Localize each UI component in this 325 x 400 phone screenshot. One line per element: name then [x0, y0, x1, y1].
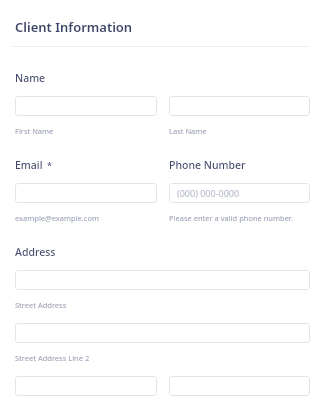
- staticText: *: [47, 159, 52, 171]
- button[interactable]: [169, 96, 310, 116]
- staticText: Street Address: [15, 300, 67, 310]
- button[interactable]: [15, 376, 157, 396]
- button[interactable]: [169, 376, 310, 396]
- staticText: Client Information: [15, 18, 133, 36]
- staticText: Phone Number: [169, 158, 246, 172]
- button[interactable]: (000) 000-0000: [169, 183, 310, 203]
- staticText: Last Name: [169, 126, 207, 136]
- button[interactable]: [15, 96, 157, 116]
- staticText: example@example.com: [15, 213, 99, 223]
- staticText: First Name: [15, 126, 54, 136]
- staticText: Email: [15, 158, 43, 172]
- staticText: (000) 000-0000: [177, 187, 240, 199]
- staticText: Please enter a valid phone number.: [169, 213, 293, 223]
- button[interactable]: [15, 323, 310, 343]
- button[interactable]: [15, 183, 157, 203]
- staticText: Name: [15, 71, 46, 85]
- staticText: Address: [15, 245, 56, 259]
- button[interactable]: [15, 270, 310, 290]
- staticText: Street Address Line 2: [15, 353, 90, 363]
